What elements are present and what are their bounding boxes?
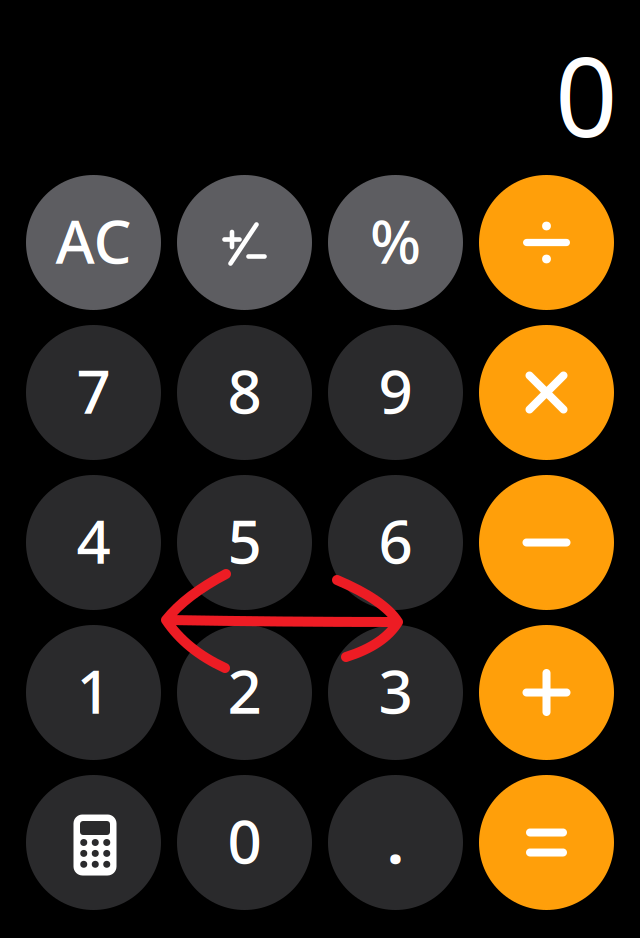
- staticText: 0: [227, 801, 261, 880]
- button[interactable]: %: [328, 175, 463, 310]
- button[interactable]: AC: [26, 175, 161, 310]
- button[interactable]: Divide: [479, 175, 614, 310]
- staticText: AC: [55, 201, 131, 280]
- staticText: 4: [76, 501, 110, 580]
- button[interactable]: Equals: [479, 775, 614, 910]
- button[interactable]: 8: [177, 325, 312, 460]
- staticText: 7: [76, 351, 110, 430]
- staticText: 5: [227, 501, 261, 580]
- button[interactable]: 0: [177, 775, 312, 910]
- staticText: 0: [555, 22, 618, 167]
- button[interactable]: .: [328, 775, 463, 910]
- button[interactable]: 9: [328, 325, 463, 460]
- button[interactable]: 2: [177, 625, 312, 760]
- button[interactable]: 6: [328, 475, 463, 610]
- staticText: 1: [76, 651, 110, 730]
- staticText: .: [387, 801, 404, 880]
- button[interactable]: 1: [26, 625, 161, 760]
- button[interactable]: 7: [26, 325, 161, 460]
- button[interactable]: Subtract: [479, 475, 614, 610]
- button[interactable]: Show calculator history: [26, 775, 161, 910]
- button[interactable]: Multiply: [479, 325, 614, 460]
- staticText: 6: [378, 501, 412, 580]
- staticText: 3: [378, 651, 412, 730]
- button[interactable]: Add: [479, 625, 614, 760]
- button[interactable]: 3: [328, 625, 463, 760]
- staticText: %: [370, 201, 421, 280]
- button[interactable]: Plus minus, toggle sign: [177, 175, 312, 310]
- staticText: 8: [227, 351, 261, 430]
- button[interactable]: 4: [26, 475, 161, 610]
- staticText: 9: [378, 351, 412, 430]
- staticText: 2: [227, 651, 261, 730]
- button[interactable]: 5: [177, 475, 312, 610]
